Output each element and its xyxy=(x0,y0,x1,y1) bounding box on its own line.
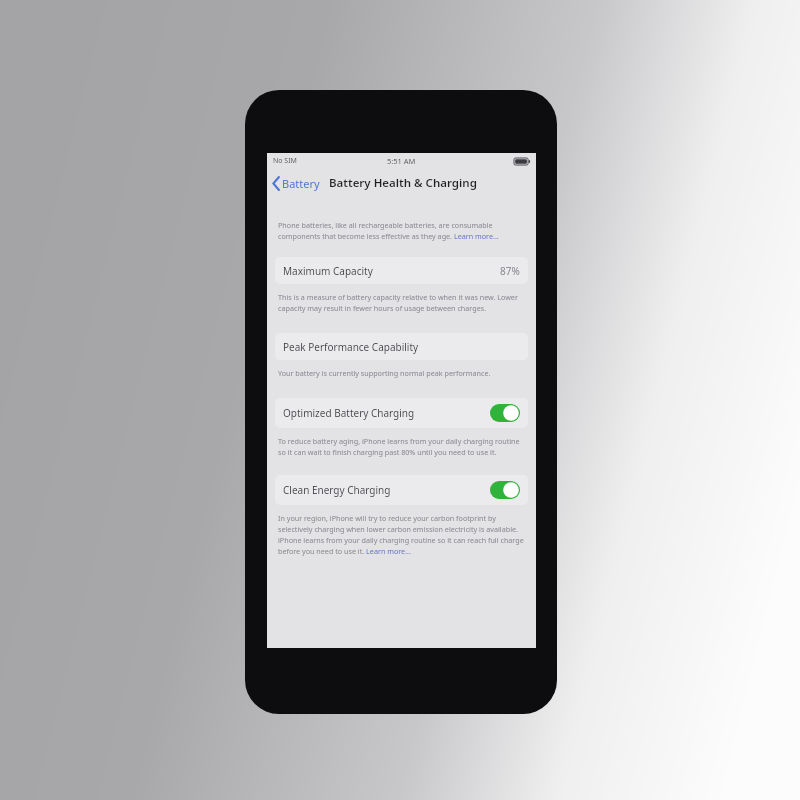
button[interactable]: Toggle on xyxy=(490,481,520,499)
staticText: 5:51 AM xyxy=(387,156,416,166)
button[interactable]: Toggle on xyxy=(490,404,520,422)
button[interactable]: Optimized Battery Charging xyxy=(275,398,528,428)
button[interactable]: Maximum Capacity xyxy=(275,257,528,284)
button[interactable]: Peak Performance Capability xyxy=(275,333,528,360)
staticText: 87% xyxy=(500,264,520,278)
staticText: Phone batteries, like all rechargeable b… xyxy=(278,220,525,241)
staticText: To reduce battery aging, iPhone learns f… xyxy=(278,436,525,457)
staticText: Maximum Capacity xyxy=(283,264,373,278)
staticText: This is a measure of battery capacity re… xyxy=(278,292,525,313)
staticText: Clean Energy Charging xyxy=(283,483,391,497)
staticText: Optimized Battery Charging xyxy=(283,406,415,420)
staticText: Peak Performance Capability xyxy=(283,340,419,354)
staticText: Battery Health & Charging xyxy=(329,175,477,191)
staticText: No SIM xyxy=(273,156,297,166)
button[interactable]: Clean Energy Charging xyxy=(275,475,528,505)
staticText: Battery xyxy=(282,176,320,191)
staticText: In your region, iPhone will try to reduc… xyxy=(278,513,525,556)
button[interactable]: Battery xyxy=(267,171,324,195)
staticText: Your battery is currently supporting nor… xyxy=(278,368,491,378)
